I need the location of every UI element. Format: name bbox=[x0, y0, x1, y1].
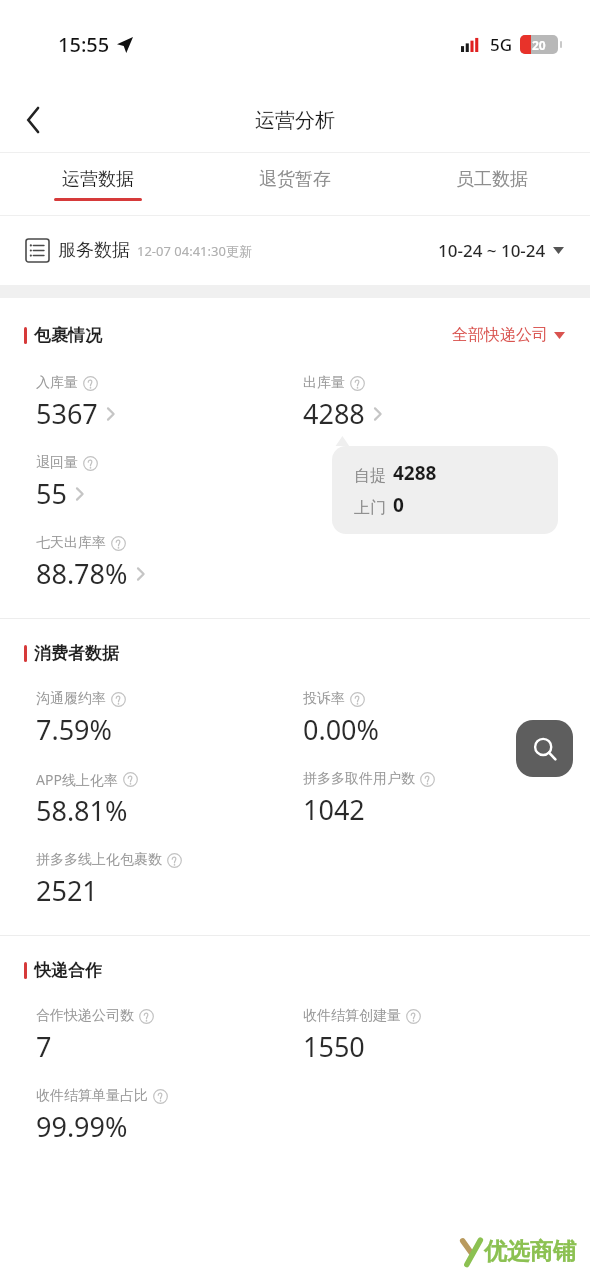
staticText: 0.00% bbox=[303, 711, 380, 748]
button[interactable]: Back bbox=[0, 88, 66, 152]
button[interactable]: 全部快递公司 bbox=[449, 322, 568, 348]
staticText: 退货暂存 bbox=[259, 168, 331, 191]
button[interactable]: 入库量 bbox=[36, 374, 303, 432]
staticText: 全部快递公司 bbox=[452, 325, 548, 345]
staticText: 服务数据 bbox=[58, 239, 130, 262]
button[interactable]: 拼多多线上化包裹数 bbox=[36, 851, 303, 909]
staticText: 拼多多线上化包裹数 bbox=[36, 851, 162, 869]
staticText: 合作快递公司数 bbox=[36, 1007, 134, 1025]
button[interactable]: Search bbox=[516, 720, 573, 777]
staticText: 优选商铺 bbox=[484, 1237, 576, 1266]
button[interactable]: 运营数据 bbox=[0, 153, 196, 215]
staticText: 七天出库率 bbox=[36, 534, 106, 552]
staticText: 消费者数据 bbox=[34, 643, 119, 664]
button[interactable]: 收件结算单量占比 bbox=[36, 1087, 303, 1145]
staticText: 0 bbox=[393, 492, 404, 518]
staticText: 1042 bbox=[303, 791, 365, 828]
staticText: 2521 bbox=[36, 872, 98, 909]
staticText: 退回量 bbox=[36, 454, 78, 472]
staticText: 收件结算单量占比 bbox=[36, 1087, 148, 1105]
staticText: 自提 bbox=[354, 466, 386, 486]
button[interactable]: 退货暂存 bbox=[196, 153, 393, 215]
button[interactable]: 收件结算创建量 bbox=[303, 1007, 570, 1065]
staticText: 包裹情况 bbox=[34, 325, 102, 346]
staticText: 4288 bbox=[303, 395, 365, 432]
staticText: 上门 bbox=[354, 498, 386, 518]
button[interactable]: 10-24 ~ 10-24 bbox=[434, 235, 568, 266]
staticText: 投诉率 bbox=[303, 690, 345, 708]
staticText: 88.78% bbox=[36, 555, 128, 592]
staticText: 55 bbox=[36, 475, 67, 512]
staticText: 收件结算创建量 bbox=[303, 1007, 401, 1025]
staticText: 出库量 bbox=[303, 374, 345, 392]
button[interactable]: APP线上化率 bbox=[36, 770, 303, 829]
button[interactable]: 合作快递公司数 bbox=[36, 1007, 303, 1065]
staticText: 58.81% bbox=[36, 792, 128, 829]
staticText: APP线上化率 bbox=[36, 770, 118, 789]
staticText: 快递合作 bbox=[34, 960, 102, 981]
staticText: 12-07 04:41:30更新 bbox=[137, 242, 252, 260]
staticText: 99.99% bbox=[36, 1108, 128, 1145]
staticText: 7 bbox=[36, 1028, 52, 1065]
staticText: 运营分析 bbox=[255, 108, 335, 133]
button[interactable]: 七天出库率 bbox=[36, 534, 303, 592]
staticText: 20 bbox=[532, 37, 546, 53]
staticText: 员工数据 bbox=[456, 168, 528, 191]
staticText: 5G bbox=[490, 33, 513, 56]
staticText: 7.59% bbox=[36, 711, 113, 748]
staticText: 拼多多取件用户数 bbox=[303, 770, 415, 788]
staticText: 5367 bbox=[36, 395, 98, 432]
button[interactable]: 投诉率 bbox=[303, 690, 570, 748]
staticText: 4288 bbox=[393, 460, 437, 486]
staticText: 10-24 ~ 10-24 bbox=[438, 239, 546, 262]
staticText: 1550 bbox=[303, 1028, 365, 1065]
staticText: 运营数据 bbox=[62, 168, 134, 191]
button[interactable]: 沟通履约率 bbox=[36, 690, 303, 748]
staticText: 15:55 bbox=[58, 31, 110, 58]
staticText: 沟通履约率 bbox=[36, 690, 106, 708]
button[interactable]: 员工数据 bbox=[393, 153, 590, 215]
staticText: 入库量 bbox=[36, 374, 78, 392]
button[interactable]: 退回量 bbox=[36, 454, 303, 512]
button[interactable]: 出库量 bbox=[303, 374, 570, 432]
button[interactable]: 拼多多取件用户数 bbox=[303, 770, 570, 828]
